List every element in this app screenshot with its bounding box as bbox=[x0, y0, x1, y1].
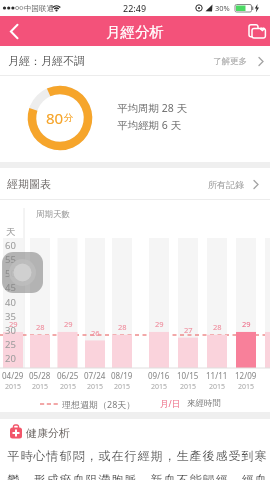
staticText: 11/11 bbox=[206, 370, 228, 380]
staticText: 55 bbox=[5, 253, 16, 265]
staticText: 29 bbox=[242, 319, 251, 329]
staticText: 月/日 bbox=[160, 398, 181, 410]
staticText: 理想週期（28天） bbox=[62, 398, 136, 410]
staticText: 27 bbox=[184, 325, 193, 335]
staticText: 2015 bbox=[87, 382, 104, 391]
staticText: 10/15 bbox=[177, 370, 199, 380]
staticText: 60 bbox=[5, 239, 16, 251]
staticText: 35 bbox=[5, 310, 16, 322]
staticText: 29 bbox=[9, 319, 18, 329]
staticText: 45 bbox=[5, 281, 16, 293]
staticText: 2015 bbox=[60, 382, 77, 391]
staticText: 所有記錄 bbox=[208, 179, 244, 190]
staticText: 2015 bbox=[32, 382, 49, 391]
staticText: 09/16 bbox=[148, 370, 170, 380]
staticText: 08/19 bbox=[111, 370, 133, 380]
staticText: 29 bbox=[155, 319, 164, 329]
staticText: 06/25 bbox=[57, 370, 79, 380]
staticText: 28 bbox=[118, 322, 127, 332]
staticText: 04/29 bbox=[2, 370, 24, 380]
staticText: 30 bbox=[5, 324, 16, 336]
button[interactable] bbox=[0, 16, 28, 46]
staticText: 28 bbox=[36, 322, 45, 332]
staticText: 30% bbox=[215, 3, 230, 13]
staticText: 中国联通 bbox=[24, 4, 54, 13]
staticText: 來經時間 bbox=[187, 398, 221, 409]
staticText: 鬱，形成瘀血阻滯胞脈，新血不能歸經，經血 bbox=[7, 472, 267, 480]
staticText: 50 bbox=[5, 267, 16, 279]
staticText: 天 bbox=[6, 226, 16, 238]
staticText: 月經：月經不調 bbox=[8, 54, 85, 68]
staticText: 05/28 bbox=[29, 370, 51, 380]
staticText: 2015 bbox=[5, 382, 22, 391]
staticText: 07/24 bbox=[84, 370, 106, 380]
staticText: 20 bbox=[5, 352, 16, 364]
button[interactable]: 所有記錄 bbox=[200, 172, 266, 196]
staticText: 2015 bbox=[114, 382, 131, 391]
staticText: 29 bbox=[64, 319, 73, 329]
staticText: 經期圖表 bbox=[7, 177, 51, 191]
staticText: 40 bbox=[5, 296, 16, 308]
staticText: 26 bbox=[91, 328, 100, 338]
staticText: 2015 bbox=[151, 382, 168, 391]
staticText: 80 bbox=[46, 108, 64, 128]
staticText: 分 bbox=[64, 112, 74, 124]
staticText: 2015 bbox=[238, 382, 255, 391]
staticText: 12/09 bbox=[235, 370, 257, 380]
staticText: 周期天數 bbox=[36, 209, 70, 220]
staticText: 平均周期 28 天 bbox=[117, 101, 187, 115]
staticText: 平時心情郁悶，或在行經期，生產後感受到寒 bbox=[7, 448, 267, 462]
staticText: 25 bbox=[5, 338, 16, 350]
staticText: 月經分析 bbox=[106, 23, 164, 41]
staticText: 2015 bbox=[180, 382, 197, 391]
staticText: 平均經期 6 天 bbox=[117, 118, 181, 132]
button[interactable]: 月經：月經不調 bbox=[0, 46, 270, 76]
staticText: 了解更多 bbox=[213, 56, 247, 67]
staticText: 健康分析 bbox=[26, 426, 70, 440]
staticText: 22:49 bbox=[123, 2, 147, 14]
staticText: 2015 bbox=[209, 382, 226, 391]
staticText: 28 bbox=[213, 322, 222, 332]
button[interactable] bbox=[244, 19, 270, 43]
